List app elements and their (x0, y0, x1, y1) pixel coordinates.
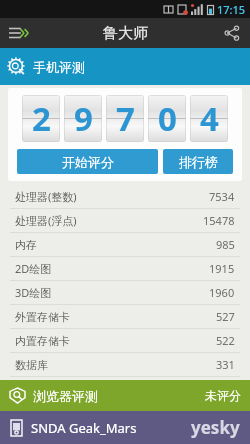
staticText: 331 (216, 357, 235, 372)
staticText: 2 (32, 96, 51, 141)
staticText: 内置存储卡 (15, 334, 70, 348)
staticText: 7534 (209, 189, 235, 204)
staticText: 4 (200, 96, 219, 141)
button[interactable]: Menu (0, 18, 36, 48)
staticText: 数据库 (15, 358, 48, 372)
staticText: 7 (116, 96, 135, 141)
button[interactable]: 数据库 (0, 353, 250, 376)
staticText: 鲁大师 (103, 24, 148, 43)
staticText: yesky (191, 416, 240, 439)
staticText: 开始评分 (62, 154, 114, 170)
staticText: 3D绘图 (15, 285, 52, 300)
button[interactable]: 2D绘图 (0, 257, 250, 280)
button[interactable]: 排行榜 (163, 149, 233, 174)
button[interactable]: 内存 (0, 233, 250, 256)
staticText: 未评分 (205, 388, 241, 403)
staticText: 17:15 (217, 2, 246, 17)
button[interactable]: Share (214, 18, 250, 48)
staticText: 9 (74, 96, 93, 141)
button[interactable]: 开始评分 (17, 149, 158, 174)
button[interactable]: 外置存储卡 (0, 305, 250, 328)
staticText: 外置存储卡 (15, 310, 70, 324)
staticText: 522 (216, 333, 235, 348)
staticText: 内存 (15, 238, 37, 252)
button[interactable]: 处理器(整数) (0, 185, 250, 208)
button[interactable]: SNDA Geak_Mars (0, 411, 250, 444)
staticText: 手机评测 (33, 59, 85, 75)
button[interactable]: 处理器(浮点) (0, 209, 250, 232)
staticText: 1960 (209, 285, 235, 300)
staticText: 排行榜 (179, 154, 218, 170)
staticText: 0 (158, 96, 177, 141)
button[interactable]: 内置存储卡 (0, 329, 250, 352)
staticText: 1915 (209, 261, 235, 276)
staticText: 15478 (203, 213, 235, 228)
staticText: 处理器(浮点) (15, 213, 77, 228)
staticText: 985 (216, 237, 235, 252)
staticText: SNDA Geak_Mars (31, 419, 137, 437)
button[interactable]: 浏览器评测 (0, 380, 250, 411)
staticText: 处理器(整数) (15, 189, 77, 204)
button[interactable]: 3D绘图 (0, 281, 250, 304)
staticText: 浏览器评测 (33, 388, 98, 404)
staticText: 2D绘图 (15, 261, 52, 276)
staticText: 527 (216, 309, 235, 324)
